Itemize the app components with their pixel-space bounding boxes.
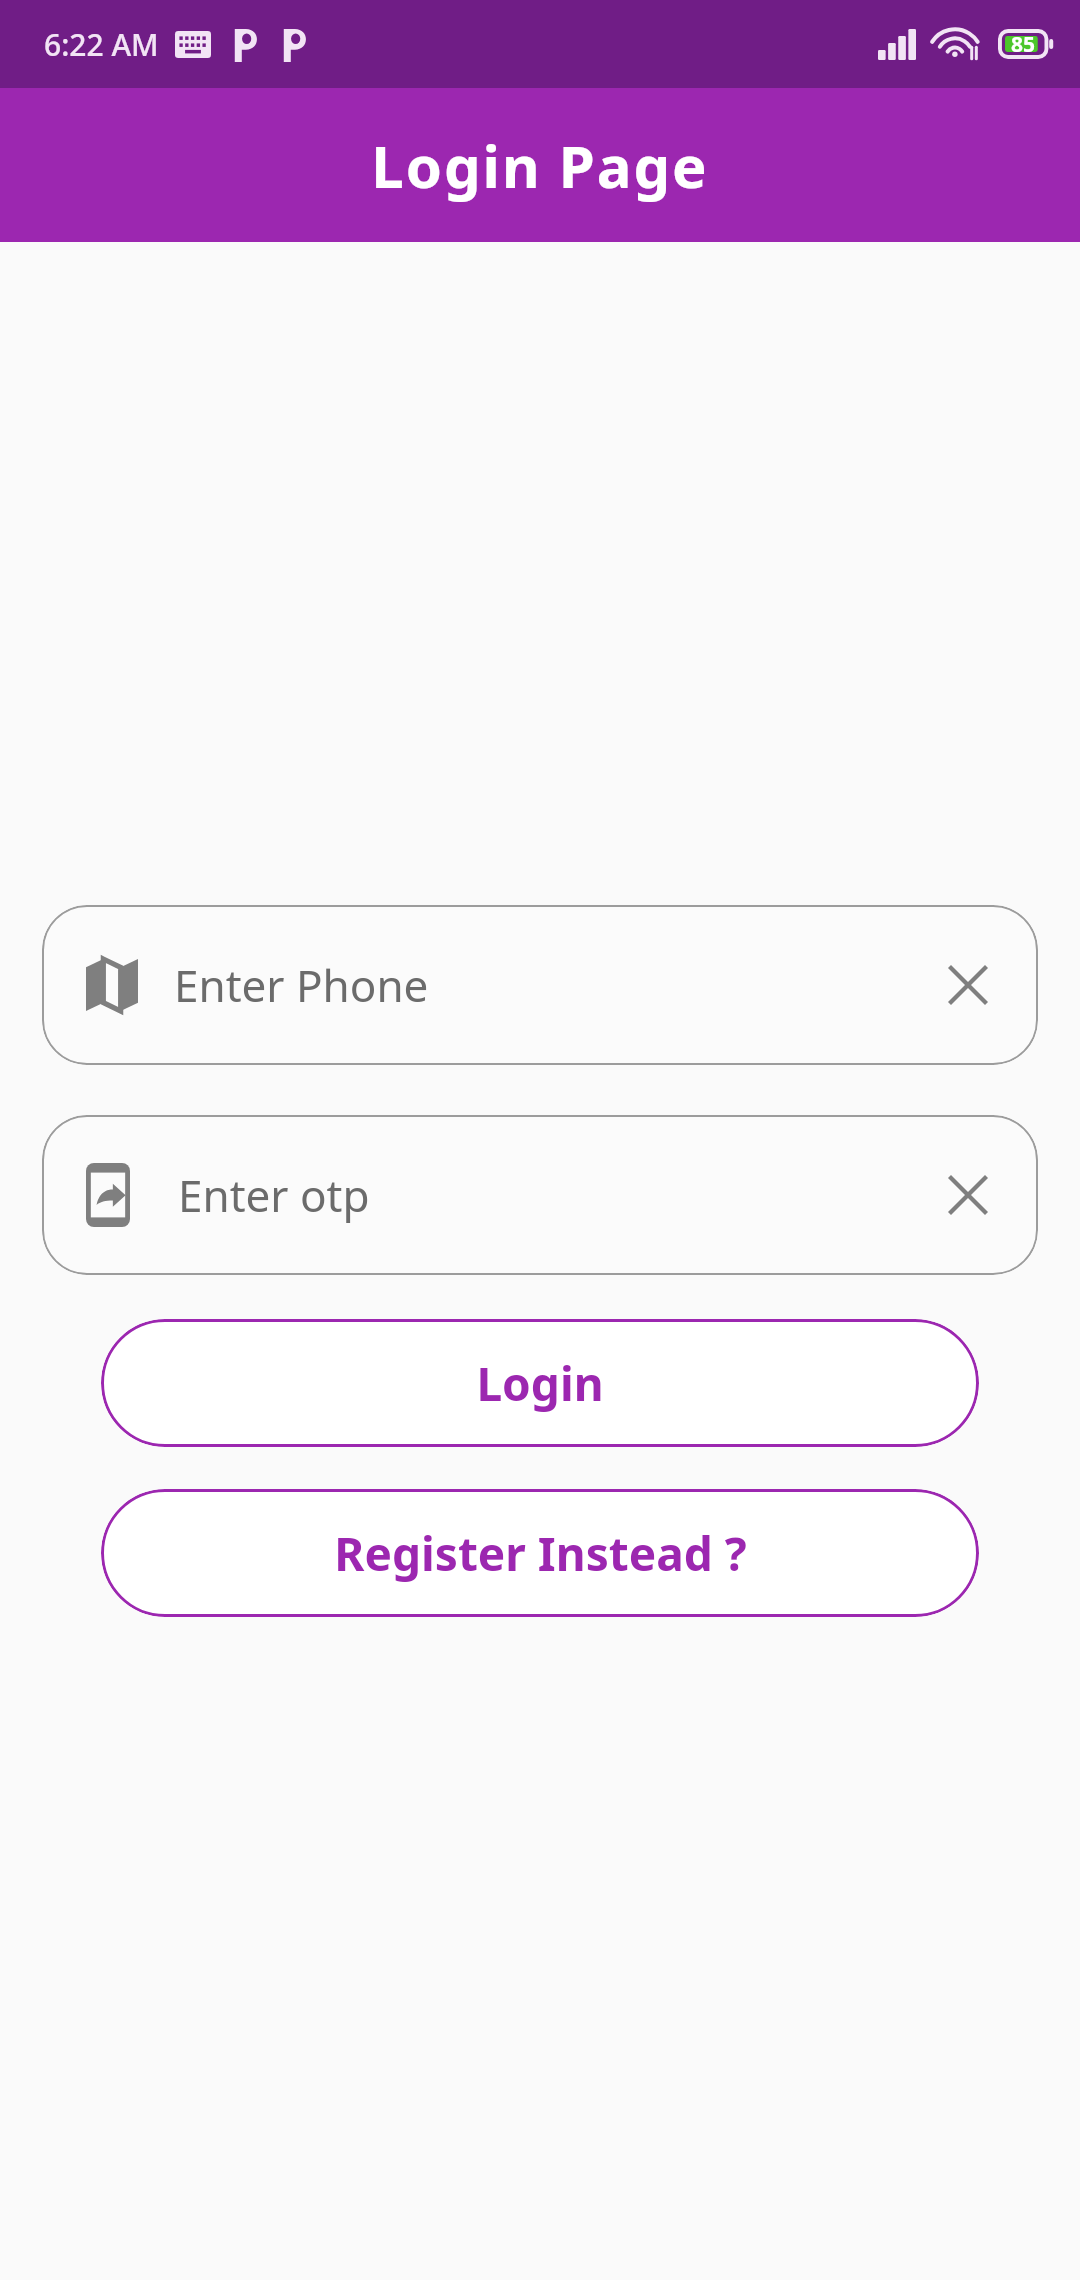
staticText: Enter otp [178,1165,370,1225]
button[interactable]: Enter otp [42,1115,1038,1275]
staticText: Enter Phone [174,955,429,1015]
staticText: Register Instead ? [334,1522,747,1585]
button[interactable]: Register Instead ? [101,1489,979,1617]
button[interactable]: Enter Phone [42,905,1038,1065]
button[interactable]: Login [101,1319,979,1447]
button[interactable]: Clear phone [936,953,1000,1017]
staticText: 6:22 AM [44,24,159,65]
staticText: Login Page [371,126,709,205]
button[interactable]: Clear otp [936,1163,1000,1227]
staticText: 85 [1011,30,1036,59]
staticText: Login [476,1352,604,1415]
